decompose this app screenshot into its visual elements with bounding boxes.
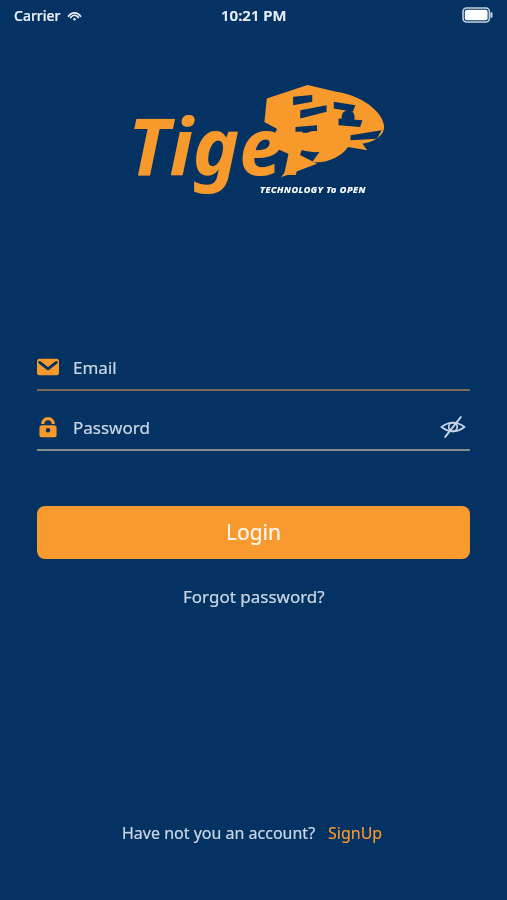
button[interactable]: Password (37, 405, 470, 449)
button[interactable]: Login (37, 506, 470, 559)
staticText: Have not you an account? (122, 822, 316, 844)
button[interactable]: Email (37, 345, 470, 389)
staticText: Login (226, 518, 282, 547)
button[interactable]: Forgot password? (175, 581, 333, 612)
staticText: Carrier (14, 6, 61, 25)
staticText: Email (73, 356, 117, 379)
button[interactable]: Show password (436, 410, 470, 444)
staticText: Forgot password? (183, 585, 325, 608)
staticText: SignUp (328, 822, 383, 844)
staticText: 10:21 PM (221, 5, 287, 25)
staticText: TECHNOLOGY To OPEN (260, 183, 366, 195)
staticText: Tiger (128, 92, 316, 198)
staticText: Password (73, 416, 150, 439)
button[interactable]: SignUp (326, 818, 385, 848)
